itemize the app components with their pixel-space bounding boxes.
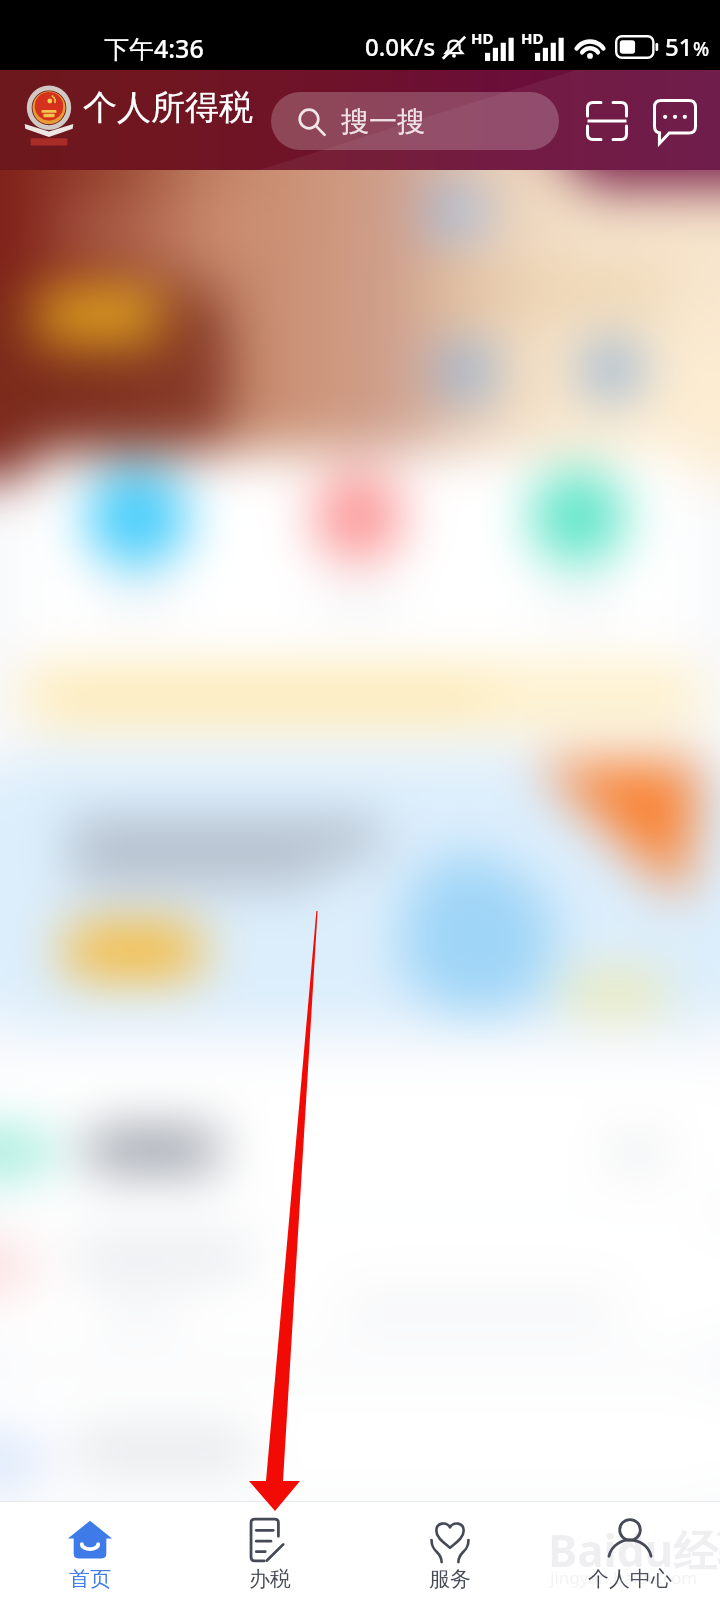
staticText: 51 bbox=[665, 30, 693, 63]
staticText: 下午4:36 bbox=[104, 31, 204, 65]
staticText: 个人中心 bbox=[588, 1566, 672, 1592]
staticText: Baidu经验 bbox=[548, 1520, 720, 1580]
staticText: 办税 bbox=[249, 1566, 291, 1592]
button[interactable]: 服务 bbox=[360, 1502, 540, 1600]
staticText: HD bbox=[471, 28, 494, 48]
button[interactable]: Messages bbox=[645, 92, 705, 150]
staticText: jingyan.baidu.com bbox=[550, 1566, 698, 1589]
staticText: HD bbox=[521, 28, 544, 48]
button[interactable]: 个人中心 bbox=[540, 1502, 720, 1600]
staticText: 服务 bbox=[429, 1566, 471, 1592]
staticText: 搜一搜 bbox=[341, 104, 425, 139]
staticText: 个人所得税 bbox=[83, 86, 253, 129]
staticText: % bbox=[693, 36, 710, 62]
button[interactable]: 搜一搜 bbox=[271, 92, 559, 150]
button[interactable]: Scan code bbox=[577, 92, 637, 150]
button[interactable]: 办税 bbox=[180, 1502, 360, 1600]
button[interactable]: 首页 bbox=[0, 1502, 180, 1600]
staticText: 首页 bbox=[69, 1566, 111, 1592]
staticText: 0.0K/s bbox=[365, 30, 436, 63]
